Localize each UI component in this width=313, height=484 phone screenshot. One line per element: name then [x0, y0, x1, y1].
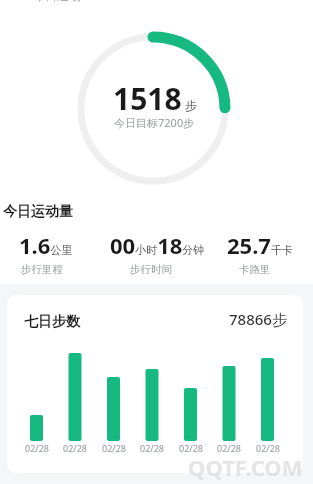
staticText: QQTF.COM [188, 452, 303, 482]
button[interactable]: 七日步数 [7, 295, 303, 473]
staticText: 今日运动量 [3, 203, 73, 221]
staticText: 02/28 [102, 442, 126, 454]
staticText: 步行时间 [130, 263, 172, 276]
staticText: 02/28 [179, 442, 203, 454]
staticText: 今日运动 [33, 0, 81, 3]
staticText: 78866步 [229, 309, 287, 329]
staticText: 1.6公里 [19, 230, 73, 260]
staticText: 02/28 [140, 442, 164, 454]
staticText: 02/28 [217, 442, 241, 454]
staticText: 00小时18分钟 [110, 230, 205, 260]
staticText: 卡路里 [239, 263, 271, 276]
staticText: 25.7千卡 [227, 230, 293, 260]
staticText: 02/28 [25, 442, 49, 454]
staticText: 1518 步 [113, 78, 197, 119]
staticText: 步行里程 [21, 263, 63, 276]
staticText: 02/28 [256, 442, 280, 454]
staticText: 七日步数 [24, 313, 80, 331]
staticText: 02/28 [63, 442, 87, 454]
staticText: 今日目标7200步 [114, 115, 195, 130]
